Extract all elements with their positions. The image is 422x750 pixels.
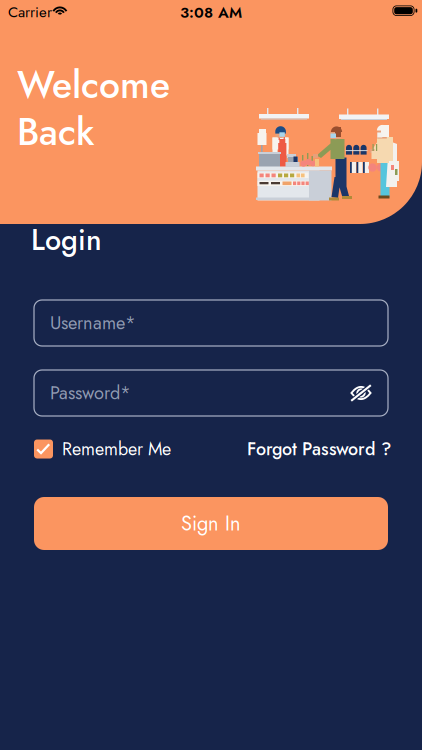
staticText: 3:08 AM <box>180 1 242 23</box>
staticText: Forgot Password ? <box>247 436 391 462</box>
staticText: Back <box>17 105 94 159</box>
button[interactable]: Show password <box>350 384 372 402</box>
staticText: Carrier <box>8 1 52 23</box>
staticText: Login <box>31 219 102 261</box>
button[interactable]: Remember Me <box>34 437 184 461</box>
staticText: Welcome <box>17 58 170 112</box>
staticText: Sign In <box>181 509 241 538</box>
staticText: Password* <box>50 380 131 406</box>
staticText: Remember Me <box>62 436 171 462</box>
button[interactable]: Forgot Password ? <box>231 437 391 461</box>
button[interactable]: Sign In <box>34 497 388 550</box>
staticText: Username* <box>50 310 136 336</box>
